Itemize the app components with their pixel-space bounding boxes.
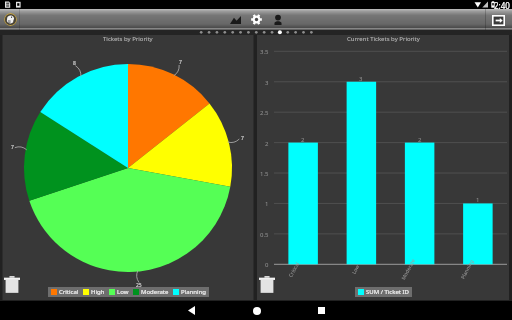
staticText: Planning [181, 288, 206, 296]
staticText: 2 [418, 136, 422, 144]
staticText: 3 [359, 75, 363, 83]
staticText: Moderate [400, 258, 417, 281]
staticText: SUM / Ticket ID [366, 288, 409, 296]
staticText: High [91, 288, 105, 296]
button[interactable]: Critical [51, 288, 79, 296]
button[interactable]: Profile [267, 9, 288, 30]
staticText: 1 [265, 200, 269, 208]
staticText: 0.5 [260, 231, 269, 239]
staticText: 7 [241, 135, 244, 142]
button[interactable]: Delete [257, 272, 277, 296]
button[interactable]: Back [179, 301, 204, 320]
staticText: Critical [287, 260, 302, 279]
staticText: 2 [265, 140, 269, 148]
button[interactable]: Delete [2, 272, 22, 296]
staticText: Low [117, 288, 129, 296]
button[interactable]: Settings [246, 9, 267, 30]
staticText: 2 [301, 136, 305, 144]
button[interactable]: Dashboards [225, 9, 246, 30]
button[interactable]: Low [109, 288, 129, 296]
staticText: 3 [265, 79, 269, 87]
staticText: 2.5 [260, 109, 269, 117]
staticText: 3.5 [260, 48, 269, 56]
staticText: 1 [476, 196, 480, 204]
staticText: 1.5 [260, 170, 269, 178]
staticText: Current Tickets by Priority [347, 35, 420, 43]
staticText: 25 [136, 282, 142, 289]
button[interactable]: Planning [173, 288, 206, 296]
button[interactable]: Moderate [133, 288, 169, 296]
button[interactable]: High [83, 288, 105, 296]
button[interactable]: Recent apps [309, 301, 334, 320]
staticText: Moderate [141, 288, 169, 296]
staticText: 8 [73, 60, 76, 67]
button[interactable]: Home [4, 13, 17, 26]
staticText: 2:40 [494, 0, 510, 9]
staticText: Planning [459, 259, 475, 280]
staticText: Critical [59, 288, 79, 296]
staticText: Tickets by Priority [103, 35, 153, 43]
button[interactable]: Home [244, 301, 269, 320]
staticText: 0 [265, 261, 269, 269]
button[interactable]: Log out [490, 12, 506, 28]
staticText: 7 [11, 144, 14, 151]
staticText: 7 [179, 59, 182, 66]
button[interactable]: SUM / Ticket ID [358, 288, 409, 296]
staticText: Low [351, 263, 361, 275]
